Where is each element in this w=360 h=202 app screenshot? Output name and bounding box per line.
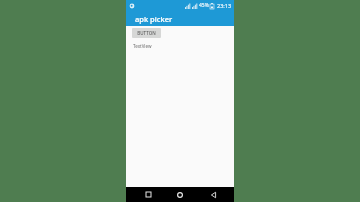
button[interactable]: Recent apps: [137, 187, 159, 202]
button[interactable]: Back: [202, 187, 224, 202]
staticText: BUTTON: [137, 30, 156, 36]
staticText: 23:13: [217, 2, 232, 9]
staticText: 45%: [199, 2, 209, 9]
button[interactable]: BUTTON: [132, 28, 161, 38]
staticText: apk picker: [135, 14, 173, 24]
button[interactable]: Home: [169, 187, 191, 202]
staticText: TextView: [133, 43, 152, 49]
button[interactable]: apk picker: [126, 11, 234, 26]
